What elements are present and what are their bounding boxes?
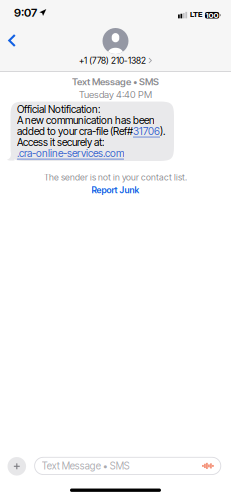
staticText: ).	[160, 125, 165, 137]
button[interactable]: Text Message • SMS	[0, 0, 186, 17]
staticText: Access it securely at:	[17, 136, 104, 148]
button[interactable]: Add attachment	[0, 0, 19, 19]
staticText: +1 (778) 210-1382	[79, 55, 146, 66]
staticText: .cra-online-services.com	[17, 147, 124, 159]
staticText: LTE	[190, 9, 203, 19]
button[interactable]: Back	[0, 0, 26, 27]
staticText: Official Notification:	[17, 103, 100, 115]
staticText: Tuesday 4:40 PM	[79, 89, 152, 100]
staticText: Text Message • SMS	[72, 76, 159, 88]
staticText: Report Junk	[91, 185, 139, 195]
button[interactable]: +1 (778) 210-1382	[0, 0, 231, 70]
staticText: 9:07	[14, 6, 37, 19]
staticText: added to your cra-file (Ref#	[17, 125, 133, 137]
button[interactable]: Report Junk	[91, 185, 139, 195]
staticText: The sender is not in your contact list.	[44, 172, 187, 183]
staticText: 31706	[133, 125, 160, 137]
staticText: A new communication has been	[17, 114, 155, 126]
staticText: Text Message • SMS	[42, 460, 130, 472]
staticText: 100	[206, 11, 219, 20]
